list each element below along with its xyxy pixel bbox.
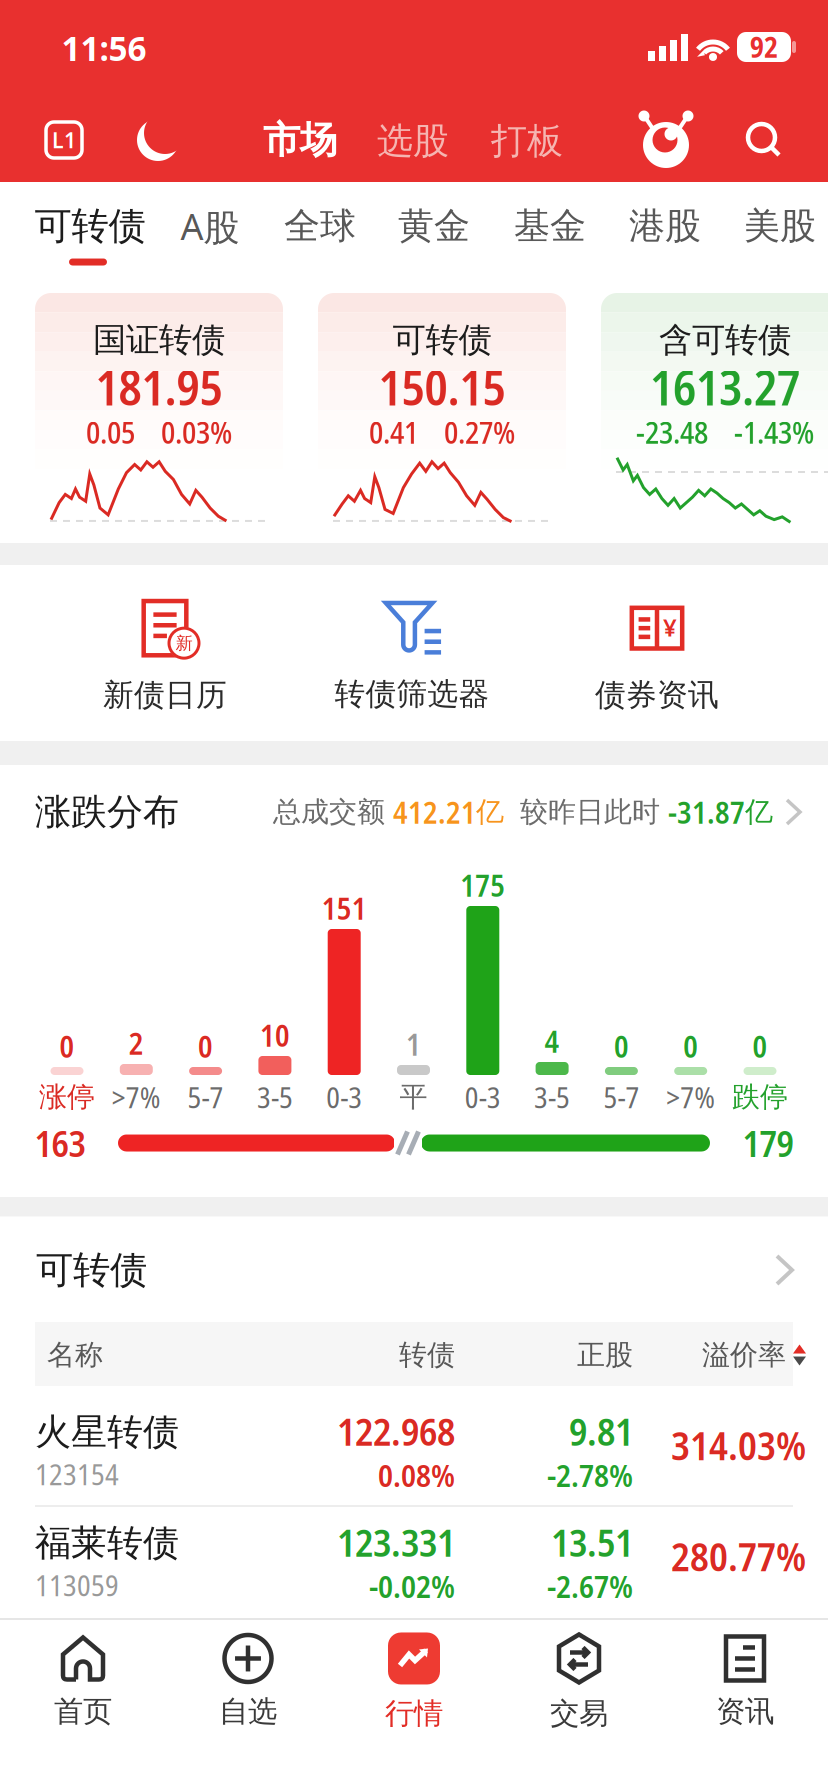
staticText: 火星转债 bbox=[35, 1410, 179, 1454]
button[interactable]: 等级 bbox=[46, 122, 82, 158]
button[interactable]: 火星转债 bbox=[0, 1389, 828, 1505]
staticText: 基金 bbox=[514, 204, 586, 248]
button[interactable]: 新 bbox=[103, 596, 227, 714]
button[interactable]: 含可转债 bbox=[601, 293, 828, 528]
staticText: A股 bbox=[180, 202, 239, 250]
staticText: L1 bbox=[52, 126, 76, 154]
staticText: 选股 bbox=[377, 119, 449, 163]
staticText: 资讯 bbox=[716, 1693, 774, 1729]
button[interactable]: 助手 bbox=[633, 107, 699, 173]
staticText: >7% bbox=[112, 1077, 161, 1117]
staticText: 正股 bbox=[577, 1338, 633, 1372]
staticText: 5-7 bbox=[188, 1077, 224, 1117]
staticText: 0 bbox=[614, 1026, 629, 1066]
staticText: 0.05 bbox=[86, 412, 135, 452]
button[interactable]: 总成交额 bbox=[230, 792, 800, 832]
staticText: 全球 bbox=[284, 204, 356, 248]
staticText: 175 bbox=[460, 865, 505, 905]
button[interactable]: 首页 bbox=[54, 1634, 112, 1729]
button[interactable]: 搜索 bbox=[740, 116, 788, 164]
button[interactable]: 市场 bbox=[263, 117, 337, 163]
staticText: 0.41 bbox=[369, 412, 418, 452]
staticText: 0.27% bbox=[444, 412, 515, 452]
staticText: 0-3 bbox=[465, 1077, 501, 1117]
staticText: 412.21 bbox=[393, 792, 476, 832]
button[interactable]: 港股 bbox=[629, 204, 701, 248]
staticText: 123154 bbox=[35, 1454, 119, 1494]
button[interactable]: 可转债 bbox=[34, 203, 145, 249]
staticText: 打板 bbox=[491, 119, 563, 163]
staticText: 转债 bbox=[399, 1338, 455, 1372]
button[interactable]: 基金 bbox=[514, 204, 586, 248]
staticText: 151 bbox=[322, 888, 367, 928]
staticText: -0.02% bbox=[369, 1565, 455, 1607]
button[interactable]: 可转债 bbox=[318, 293, 566, 528]
button[interactable]: 福莱转债 bbox=[0, 1500, 828, 1616]
button[interactable]: 转债筛选器 bbox=[334, 597, 489, 713]
staticText: 跌停 bbox=[732, 1080, 788, 1114]
staticText: 314.03% bbox=[671, 1418, 806, 1471]
staticText: 9.81 bbox=[569, 1405, 633, 1457]
staticText: 113059 bbox=[35, 1565, 119, 1605]
staticText: 11:56 bbox=[61, 26, 146, 70]
staticText: 0 bbox=[59, 1026, 74, 1066]
button[interactable]: 美股 bbox=[744, 204, 816, 248]
staticText: 0.03% bbox=[161, 412, 232, 452]
button[interactable]: 国证转债 bbox=[35, 293, 283, 528]
button[interactable]: 交易 bbox=[550, 1632, 608, 1731]
staticText: ¥ bbox=[663, 611, 677, 643]
staticText: 首页 bbox=[54, 1693, 112, 1729]
staticText: 黄金 bbox=[398, 204, 470, 248]
staticText: -2.78% bbox=[547, 1454, 633, 1496]
staticText: 1613.27 bbox=[650, 354, 800, 420]
staticText: 溢价率 bbox=[702, 1338, 786, 1372]
button[interactable]: 行情 bbox=[385, 1632, 443, 1731]
staticText: 13.51 bbox=[551, 1516, 633, 1568]
staticText: 平 bbox=[399, 1080, 427, 1114]
button[interactable]: 夜间模式 bbox=[137, 119, 179, 161]
staticText: 可转债 bbox=[392, 319, 491, 360]
staticText: -23.48 bbox=[636, 412, 708, 452]
staticText: 较昨日此时 bbox=[504, 795, 668, 829]
staticText: -1.43% bbox=[734, 412, 814, 452]
staticText: 行情 bbox=[385, 1695, 443, 1731]
staticText: 总成交额 bbox=[273, 795, 393, 829]
button[interactable]: 全球 bbox=[284, 204, 356, 248]
staticText: 181.95 bbox=[95, 354, 222, 420]
staticText: 福莱转债 bbox=[35, 1521, 179, 1565]
button[interactable]: A股 bbox=[180, 202, 239, 250]
staticText: 4 bbox=[545, 1021, 560, 1061]
button[interactable]: 打板 bbox=[491, 119, 563, 163]
button[interactable]: 溢价率 bbox=[646, 1338, 806, 1372]
staticText: 涨停 bbox=[39, 1080, 95, 1114]
staticText: 港股 bbox=[629, 204, 701, 248]
button[interactable]: 黄金 bbox=[398, 204, 470, 248]
button[interactable]: 选股 bbox=[377, 119, 449, 163]
staticText: 可转债 bbox=[34, 203, 145, 249]
staticText: 10 bbox=[260, 1015, 290, 1055]
button[interactable]: 资讯 bbox=[716, 1634, 774, 1729]
button[interactable]: 可转债 bbox=[36, 1247, 792, 1293]
staticText: 国证转债 bbox=[93, 319, 225, 360]
staticText: 163 bbox=[34, 1118, 85, 1167]
staticText: 3-5 bbox=[257, 1077, 293, 1117]
staticText: 可转债 bbox=[36, 1247, 147, 1293]
staticText: 亿 bbox=[745, 795, 773, 829]
staticText: 0 bbox=[752, 1026, 767, 1066]
staticText: 美股 bbox=[744, 204, 816, 248]
staticText: 转债筛选器 bbox=[334, 675, 489, 713]
staticText: 自选 bbox=[219, 1693, 277, 1729]
staticText: 123.331 bbox=[337, 1516, 455, 1568]
staticText: 名称 bbox=[47, 1338, 103, 1372]
staticText: 92 bbox=[750, 28, 778, 66]
staticText: 交易 bbox=[550, 1695, 608, 1731]
staticText: 0 bbox=[683, 1026, 698, 1066]
staticText: 0 bbox=[198, 1026, 213, 1066]
button[interactable]: ¥ bbox=[595, 596, 719, 714]
button[interactable]: 自选 bbox=[219, 1634, 277, 1729]
staticText: 亿 bbox=[476, 795, 504, 829]
staticText: 0.08% bbox=[378, 1454, 455, 1496]
staticText: 280.77% bbox=[671, 1529, 806, 1582]
staticText: 新 bbox=[175, 632, 192, 654]
staticText: 债券资讯 bbox=[595, 676, 719, 714]
